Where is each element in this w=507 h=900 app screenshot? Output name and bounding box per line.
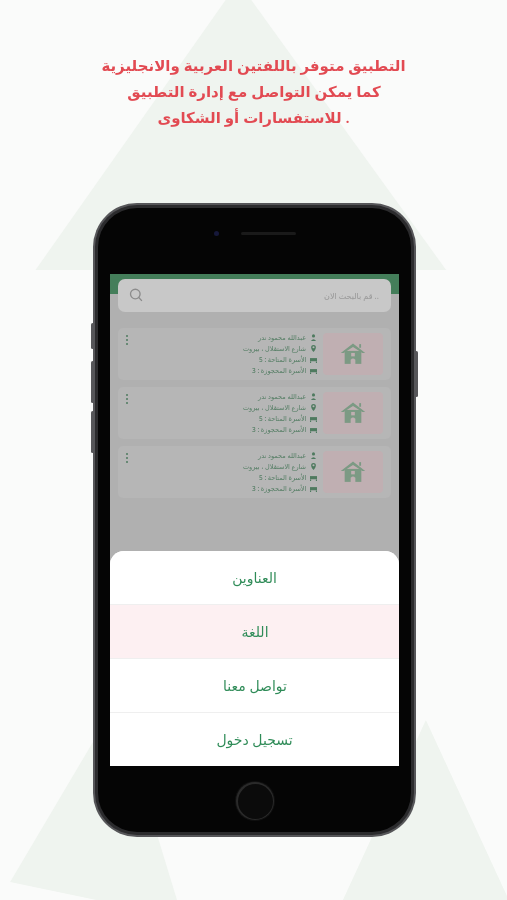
staticText: الأسرة المحجوزة : 3: [252, 484, 307, 493]
button[interactable]: اللغة: [110, 605, 399, 658]
staticText: التطبيق متوفر باللفتين العربية والانجليز…: [101, 55, 406, 75]
staticText: الأسرة المتاحة : 5: [259, 414, 307, 423]
button[interactable]: More options: [118, 387, 391, 439]
button[interactable]: More options: [126, 394, 128, 404]
button[interactable]: More options: [126, 335, 128, 345]
staticText: كما يمكن التواصل مع إدارة التطبيق: [127, 81, 381, 101]
button[interactable]: More options: [126, 453, 128, 463]
staticText: الأسرة المحجوزة : 3: [252, 366, 307, 375]
staticText: تسجيل دخول: [216, 730, 293, 749]
staticText: شارع الاستقلال ، بيروت: [243, 344, 307, 353]
staticText: للاستفسارات أو الشكاوى .: [157, 107, 350, 127]
staticText: اللغة: [241, 624, 269, 640]
staticText: العناوين: [232, 570, 277, 586]
button[interactable]: تواصل معنا: [110, 659, 399, 712]
staticText: عبدالله محمود ندر: [258, 451, 307, 460]
staticText: الأسرة المحجوزة : 3: [252, 425, 307, 434]
button[interactable]: More options: [118, 328, 391, 380]
button[interactable]: قم بالبحث الان ..: [118, 279, 391, 312]
staticText: عبدالله محمود ندر: [258, 333, 307, 342]
staticText: الأسرة المتاحة : 5: [259, 473, 307, 482]
button[interactable]: تسجيل دخول: [110, 713, 399, 766]
staticText: شارع الاستقلال ، بيروت: [243, 462, 307, 471]
button[interactable]: العناوين: [110, 551, 399, 604]
staticText: الأسرة المتاحة : 5: [259, 355, 307, 364]
staticText: تواصل معنا: [223, 676, 287, 695]
staticText: قم بالبحث الان ..: [324, 290, 379, 301]
staticText: عبدالله محمود ندر: [258, 392, 307, 401]
button[interactable]: More options: [118, 446, 391, 498]
staticText: شارع الاستقلال ، بيروت: [243, 403, 307, 412]
